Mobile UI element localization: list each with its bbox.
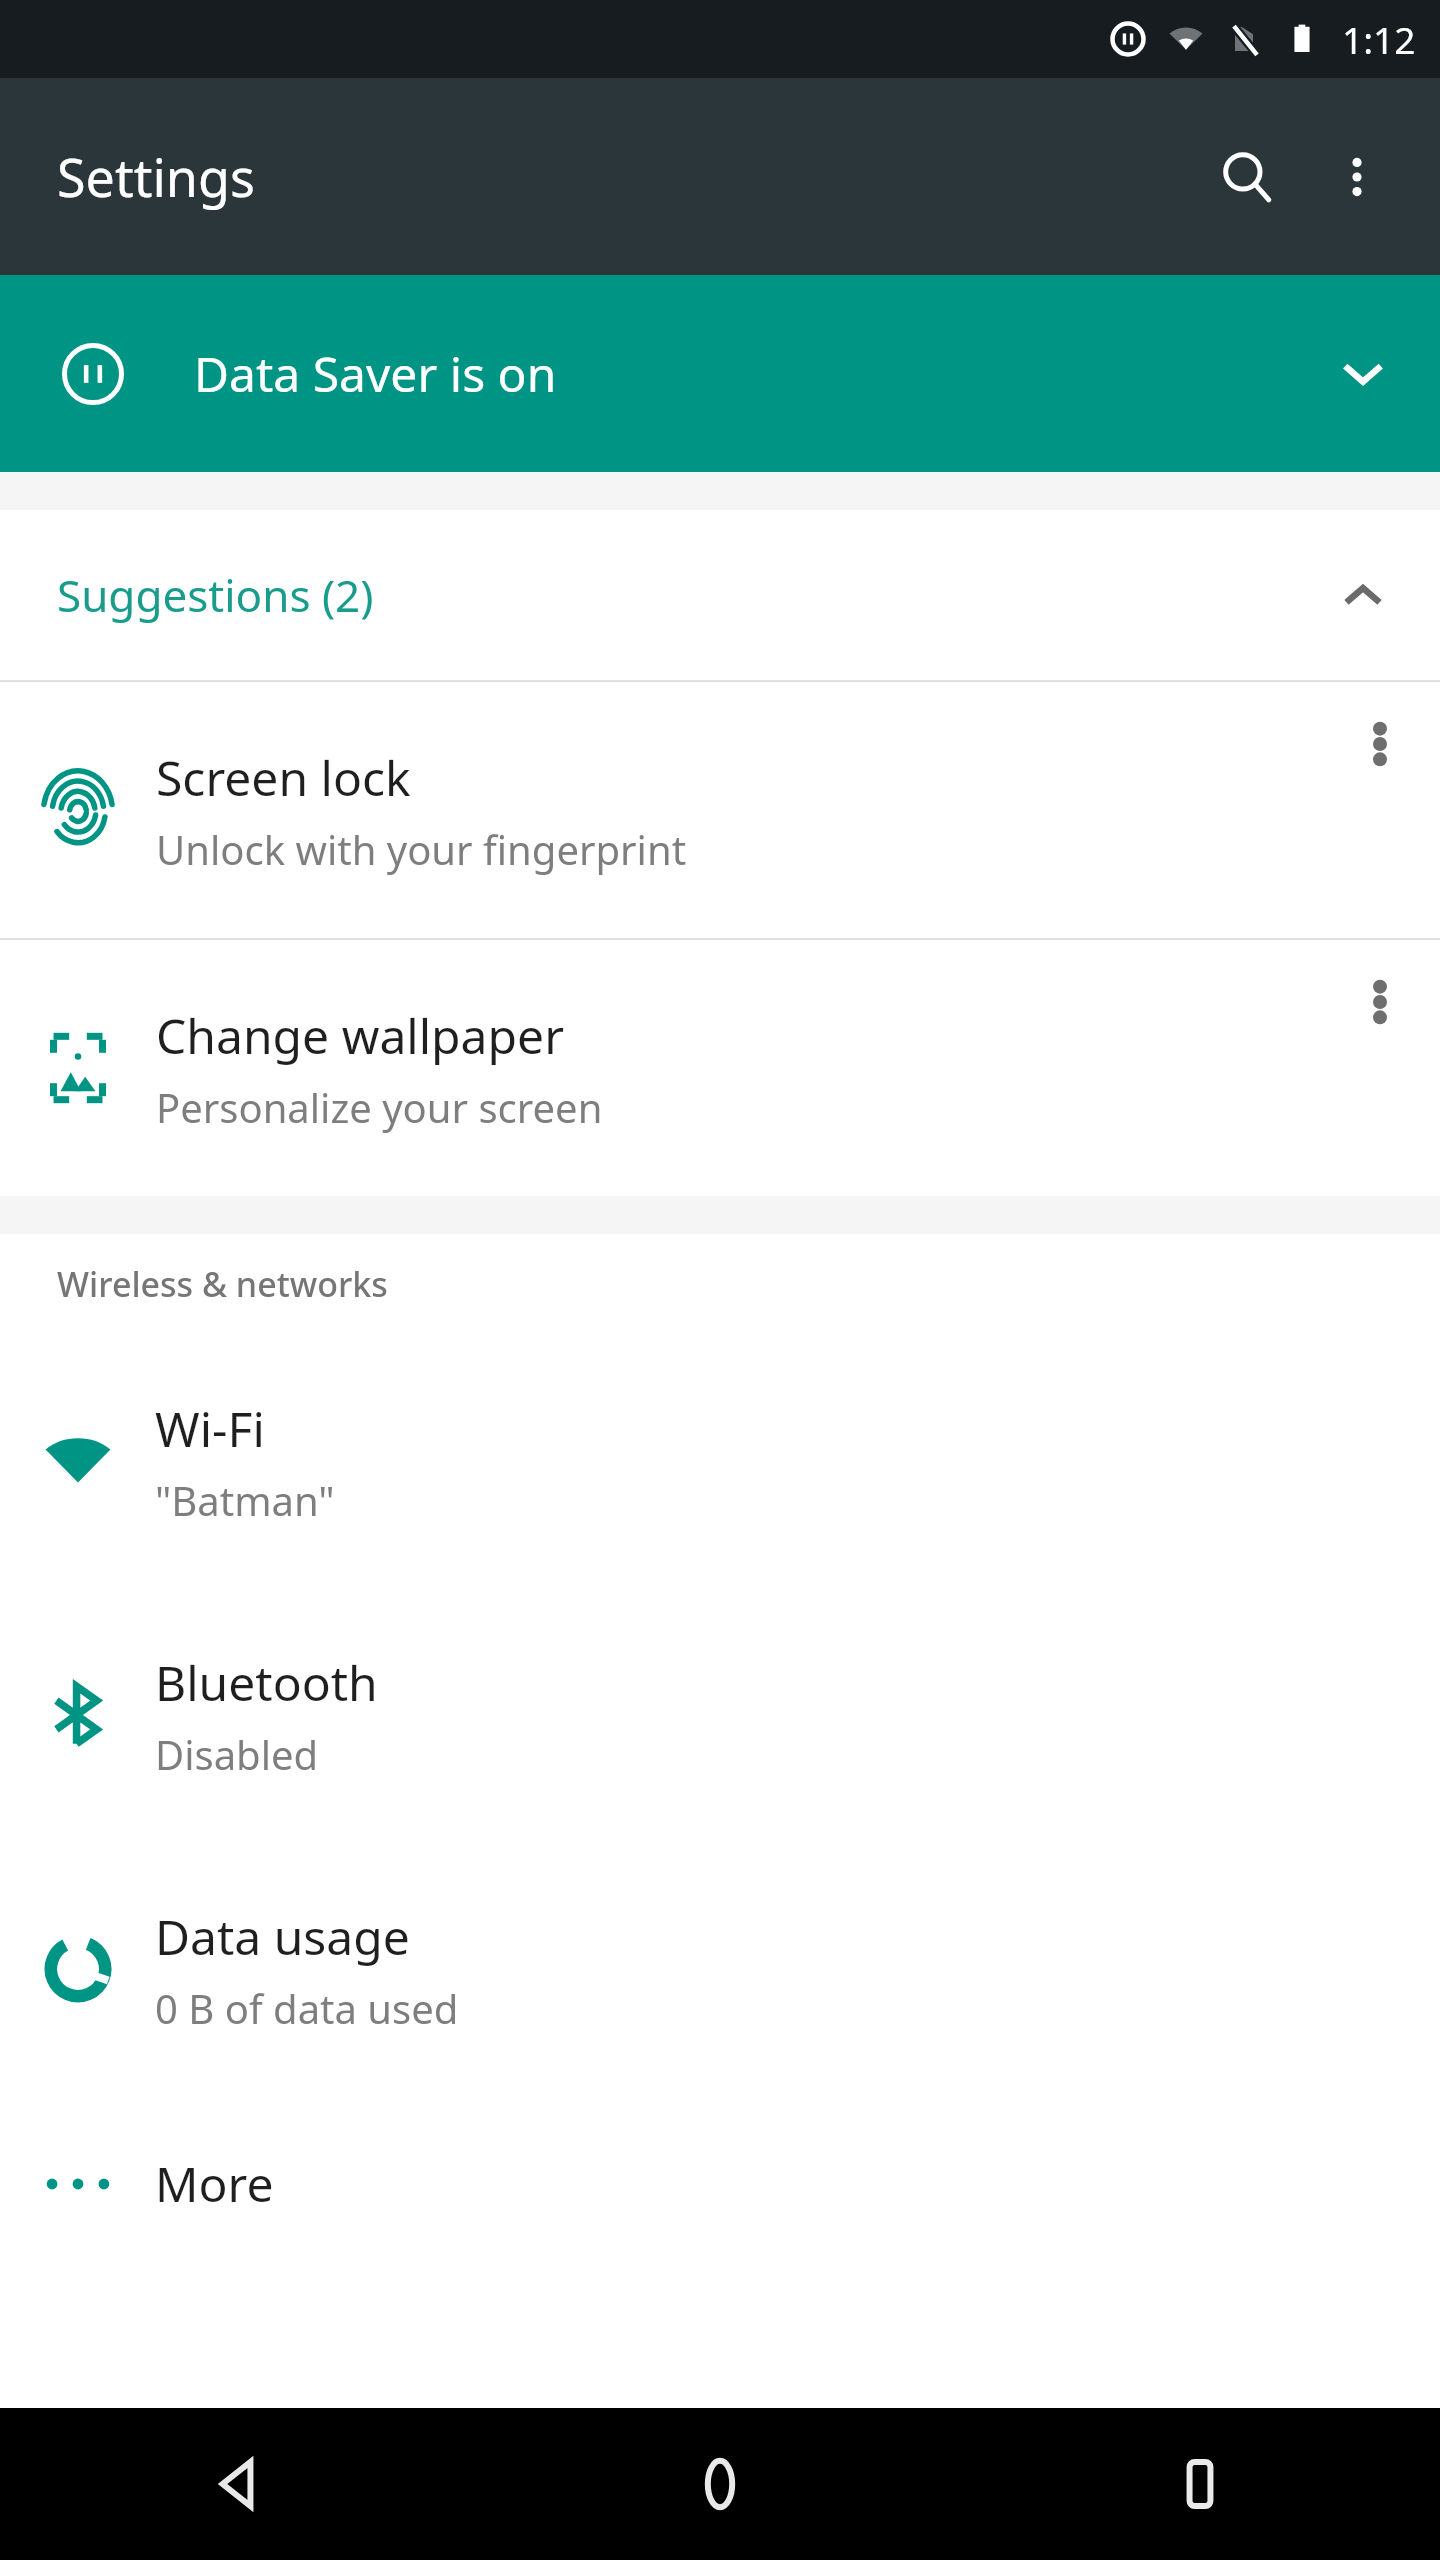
staticText: Disabled xyxy=(155,1727,319,1781)
staticText: Wireless & networks xyxy=(57,1261,388,1307)
button[interactable]: Wi-Fi xyxy=(0,1334,1440,1588)
button[interactable]: Suggestions (2) xyxy=(0,510,1440,680)
staticText: Settings xyxy=(57,141,255,212)
staticText: "Batman" xyxy=(155,1473,335,1527)
button[interactable]: More xyxy=(0,2096,1440,2271)
staticText: Screen lock xyxy=(156,745,411,810)
button[interactable]: Expand xyxy=(1308,319,1418,429)
staticText: Data usage xyxy=(155,1904,410,1969)
button[interactable]: More options xyxy=(1302,122,1412,232)
staticText: Personalize your screen xyxy=(156,1080,603,1134)
staticText: Suggestions (2) xyxy=(57,565,374,625)
button[interactable]: Back xyxy=(0,2408,480,2560)
button[interactable]: Screen lock xyxy=(0,682,1440,938)
button[interactable]: Data Saver is on xyxy=(0,275,1440,472)
staticText: Bluetooth xyxy=(155,1650,378,1715)
button[interactable]: Data usage xyxy=(0,1842,1440,2096)
button[interactable]: Bluetooth xyxy=(0,1588,1440,1842)
button[interactable]: Options xyxy=(1320,940,1440,1196)
staticText: 1:12 xyxy=(1342,14,1416,64)
staticText: Wi-Fi xyxy=(155,1396,265,1461)
button[interactable]: Change wallpaper xyxy=(0,940,1440,1196)
button[interactable]: Search xyxy=(1192,122,1302,232)
button[interactable]: Collapse suggestions xyxy=(1308,540,1418,650)
button[interactable]: Recents xyxy=(960,2408,1440,2560)
staticText: Unlock with your fingerprint xyxy=(156,822,687,876)
staticText: Data Saver is on xyxy=(194,341,557,406)
staticText: More xyxy=(155,2151,274,2216)
button[interactable]: Options xyxy=(1320,682,1440,938)
staticText: 0 B of data used xyxy=(155,1981,459,2035)
button[interactable]: Home xyxy=(480,2408,960,2560)
staticText: Change wallpaper xyxy=(156,1003,564,1068)
